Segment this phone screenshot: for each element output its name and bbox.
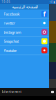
staticText: الصفحة الرئيسية <box>11 4 37 9</box>
staticText: Instagram <box>4 29 22 35</box>
button[interactable]: Facebook <box>0 10 49 19</box>
staticText: Snapchat <box>4 39 19 44</box>
staticText: Advertisement <box>1 90 21 94</box>
staticText: f <box>43 9 46 18</box>
button[interactable]: Ad info <box>50 90 54 94</box>
staticText: ·ıl ▮ <box>50 0 55 4</box>
staticText: 10:05 <box>1 0 10 4</box>
button[interactable]: Twitter <box>0 19 49 28</box>
button[interactable]: Snapchat <box>0 37 49 46</box>
staticText: Facebook <box>4 11 20 17</box>
staticText: Twitter <box>4 20 16 26</box>
button[interactable]: Youtube <box>0 46 49 55</box>
staticText: Youtube <box>4 48 17 53</box>
button[interactable]: Instagram <box>0 28 49 37</box>
